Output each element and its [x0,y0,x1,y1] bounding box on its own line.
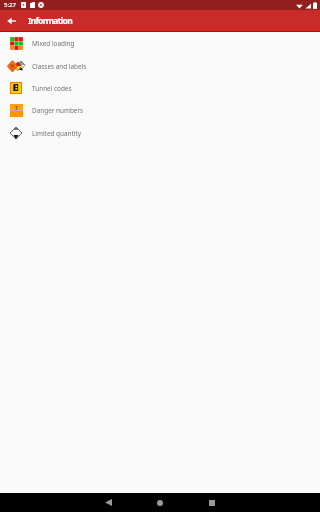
button[interactable]: Tunnel codes [0,77,320,99]
button[interactable]: Recent apps [186,493,238,512]
button[interactable]: 7 [0,99,320,122]
staticText: Limited quantity [32,129,82,138]
button[interactable]: Home [134,493,186,512]
staticText: Danger numbers [32,106,84,115]
staticText: 7 [15,105,18,112]
staticText: Tunnel codes [32,84,72,93]
button[interactable]: Back [82,493,134,512]
button[interactable]: Mixed loading [0,32,320,55]
button[interactable]: Limited quantity [0,122,320,144]
staticText: Mixed loading [32,39,75,48]
button[interactable]: Navigate back [0,10,22,32]
staticText: Classes and labels [32,62,87,71]
button[interactable]: Classes and labels [0,55,320,77]
staticText: Information [28,15,72,27]
staticText: 5:27 [4,1,16,9]
